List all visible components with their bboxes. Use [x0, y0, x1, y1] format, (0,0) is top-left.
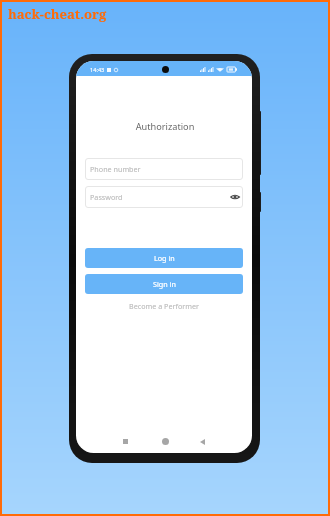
staticText: Password	[90, 192, 123, 202]
other: Show password	[230, 194, 240, 200]
staticText: Become a Performer	[129, 301, 199, 311]
button[interactable]: Become a Performer	[76, 299, 252, 313]
staticText: Sign in	[153, 279, 176, 289]
button[interactable]: Phone number	[85, 158, 243, 180]
button[interactable]: Recent apps	[117, 433, 134, 450]
button[interactable]: Sign in	[85, 274, 243, 294]
staticText: hack-cheat.org	[8, 5, 107, 23]
button[interactable]: Home	[157, 433, 174, 450]
staticText: 14:43	[90, 66, 105, 74]
button[interactable]: Password	[85, 186, 243, 208]
button[interactable]: Log in	[85, 248, 243, 268]
button[interactable]: Back	[194, 433, 211, 450]
staticText: Log in	[154, 253, 175, 263]
staticText: Phone number	[90, 164, 141, 174]
staticText: Authorization	[77, 120, 252, 133]
